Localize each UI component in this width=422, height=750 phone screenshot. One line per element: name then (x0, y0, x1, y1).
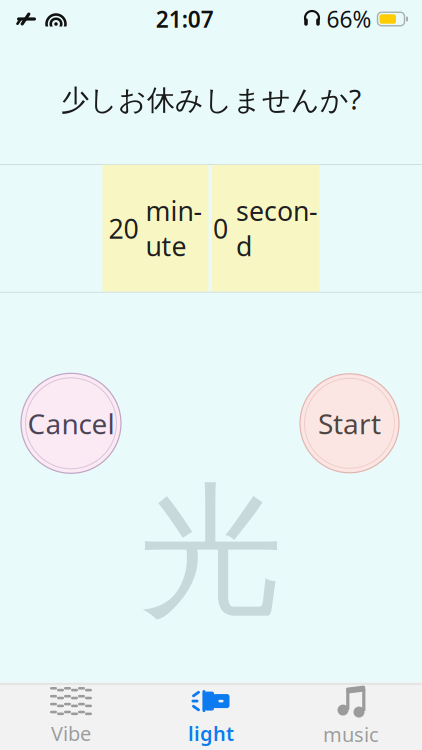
staticText: 少しお休みしませんか? (61, 80, 361, 118)
staticText: 20 (108, 211, 138, 246)
button[interactable]: music (281, 686, 421, 746)
staticText: 光 (139, 464, 283, 641)
staticText: 0 (213, 211, 228, 246)
staticText: Cancel (27, 405, 114, 442)
staticText: light (188, 720, 234, 747)
button[interactable]: Start (299, 373, 400, 474)
staticText: 66% (326, 4, 371, 34)
button[interactable]: Cancel (20, 372, 122, 474)
staticText: Start (318, 405, 381, 442)
button[interactable]: Vibe (1, 686, 141, 746)
button[interactable]: light (141, 686, 281, 746)
staticText: music (323, 721, 379, 748)
staticText: second (236, 193, 318, 264)
staticText: Vibe (51, 720, 91, 747)
staticText: 21:07 (156, 4, 214, 34)
staticText: minute (145, 193, 202, 264)
